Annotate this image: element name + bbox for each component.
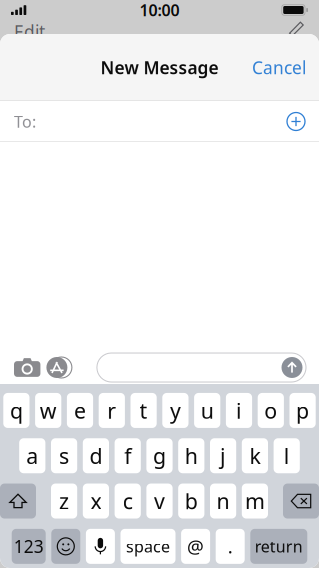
button[interactable]: Apps	[46, 357, 72, 378]
staticText: To:	[14, 111, 36, 132]
button[interactable]: Dictate	[86, 529, 115, 564]
button[interactable]: x	[83, 483, 109, 518]
staticText: x	[90, 487, 101, 515]
button[interactable]: h	[178, 438, 204, 473]
button[interactable]: m	[242, 483, 268, 518]
button[interactable]: f	[115, 438, 141, 473]
staticText: y	[170, 396, 181, 425]
staticText: h	[185, 442, 198, 470]
button[interactable]: e	[67, 393, 93, 428]
staticText: w	[40, 396, 57, 425]
staticText: e	[74, 396, 86, 425]
staticText: i	[236, 396, 242, 425]
button[interactable]: n	[210, 483, 236, 518]
button[interactable]: p	[289, 393, 316, 428]
button[interactable]: v	[146, 483, 173, 518]
staticText: Cancel	[252, 56, 306, 79]
staticText: v	[154, 487, 165, 515]
staticText: .	[228, 534, 233, 559]
button[interactable]: r	[99, 393, 125, 428]
button[interactable]: return	[250, 529, 307, 564]
button[interactable]: y	[162, 393, 188, 428]
staticText: space	[126, 536, 170, 557]
staticText: a	[26, 442, 38, 470]
button[interactable]: c	[115, 483, 141, 518]
staticText: q	[10, 396, 23, 425]
staticText: New Message	[100, 56, 218, 79]
button[interactable]: t	[130, 393, 157, 428]
button[interactable]: space	[120, 529, 175, 564]
button[interactable]: Message field	[97, 353, 306, 382]
button[interactable]: q	[3, 393, 29, 428]
button[interactable]: w	[35, 393, 61, 428]
staticText: f	[124, 442, 131, 470]
staticText: 10:00	[139, 0, 179, 21]
button[interactable]: a	[19, 438, 45, 473]
staticText: d	[89, 442, 102, 470]
button[interactable]: d	[83, 438, 109, 473]
button[interactable]: Shift	[0, 483, 36, 518]
button[interactable]: b	[178, 483, 204, 518]
staticText: z	[59, 487, 69, 515]
staticText: o	[264, 396, 277, 425]
staticText: t	[140, 396, 148, 425]
staticText: r	[107, 396, 116, 425]
staticText: s	[59, 442, 69, 470]
staticText: l	[284, 442, 290, 470]
staticText: return	[255, 536, 303, 557]
button[interactable]: @	[181, 529, 210, 564]
staticText: m	[245, 487, 265, 515]
staticText: 123	[14, 535, 44, 558]
staticText: c	[123, 487, 133, 515]
button[interactable]: u	[194, 393, 220, 428]
button[interactable]: z	[51, 483, 77, 518]
staticText: j	[220, 442, 226, 470]
staticText: n	[217, 487, 230, 515]
button[interactable]: Add Contact	[281, 106, 311, 136]
staticText: Edit	[14, 20, 45, 43]
button[interactable]: g	[146, 438, 173, 473]
button[interactable]: o	[258, 393, 284, 428]
button[interactable]: i	[226, 393, 252, 428]
staticText: b	[185, 487, 198, 515]
button[interactable]: .	[216, 529, 245, 564]
button[interactable]: Delete	[283, 483, 319, 518]
button[interactable]: Emoji	[51, 529, 80, 564]
staticText: @	[187, 534, 204, 559]
staticText: u	[201, 396, 214, 425]
staticText: k	[249, 442, 260, 470]
button[interactable]: j	[210, 438, 236, 473]
button[interactable]: s	[51, 438, 77, 473]
button[interactable]: k	[242, 438, 268, 473]
staticText: g	[153, 442, 166, 470]
button[interactable]: Camera	[14, 357, 40, 377]
button[interactable]: l	[274, 438, 300, 473]
staticText: p	[296, 396, 309, 425]
button[interactable]: 123	[12, 529, 46, 564]
button[interactable]: Cancel	[245, 47, 313, 88]
